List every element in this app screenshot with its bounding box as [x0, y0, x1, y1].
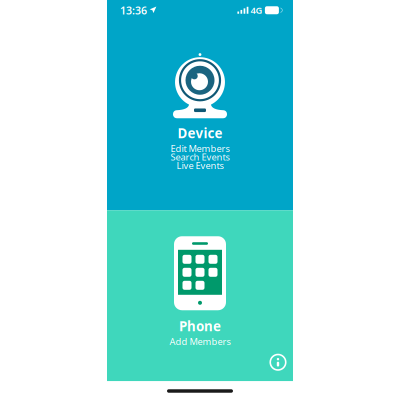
button[interactable]: Info	[265, 349, 291, 375]
staticText: Live Events	[176, 159, 223, 172]
staticText: Edit Members	[170, 142, 229, 154]
button[interactable]: Device	[168, 52, 232, 142]
button[interactable]: Live Events	[176, 161, 223, 170]
staticText: 4G	[250, 4, 262, 16]
staticText: Device	[177, 124, 222, 142]
staticText: Add Members	[169, 335, 230, 347]
button[interactable]: Search Events	[170, 153, 229, 161]
button[interactable]: Edit Members	[170, 144, 229, 153]
button[interactable]: Add Members	[169, 337, 230, 346]
staticText: 13:36	[120, 3, 147, 17]
staticText: Phone	[179, 317, 221, 335]
button[interactable]: Phone	[174, 236, 226, 335]
staticText: Search Events	[170, 151, 229, 163]
